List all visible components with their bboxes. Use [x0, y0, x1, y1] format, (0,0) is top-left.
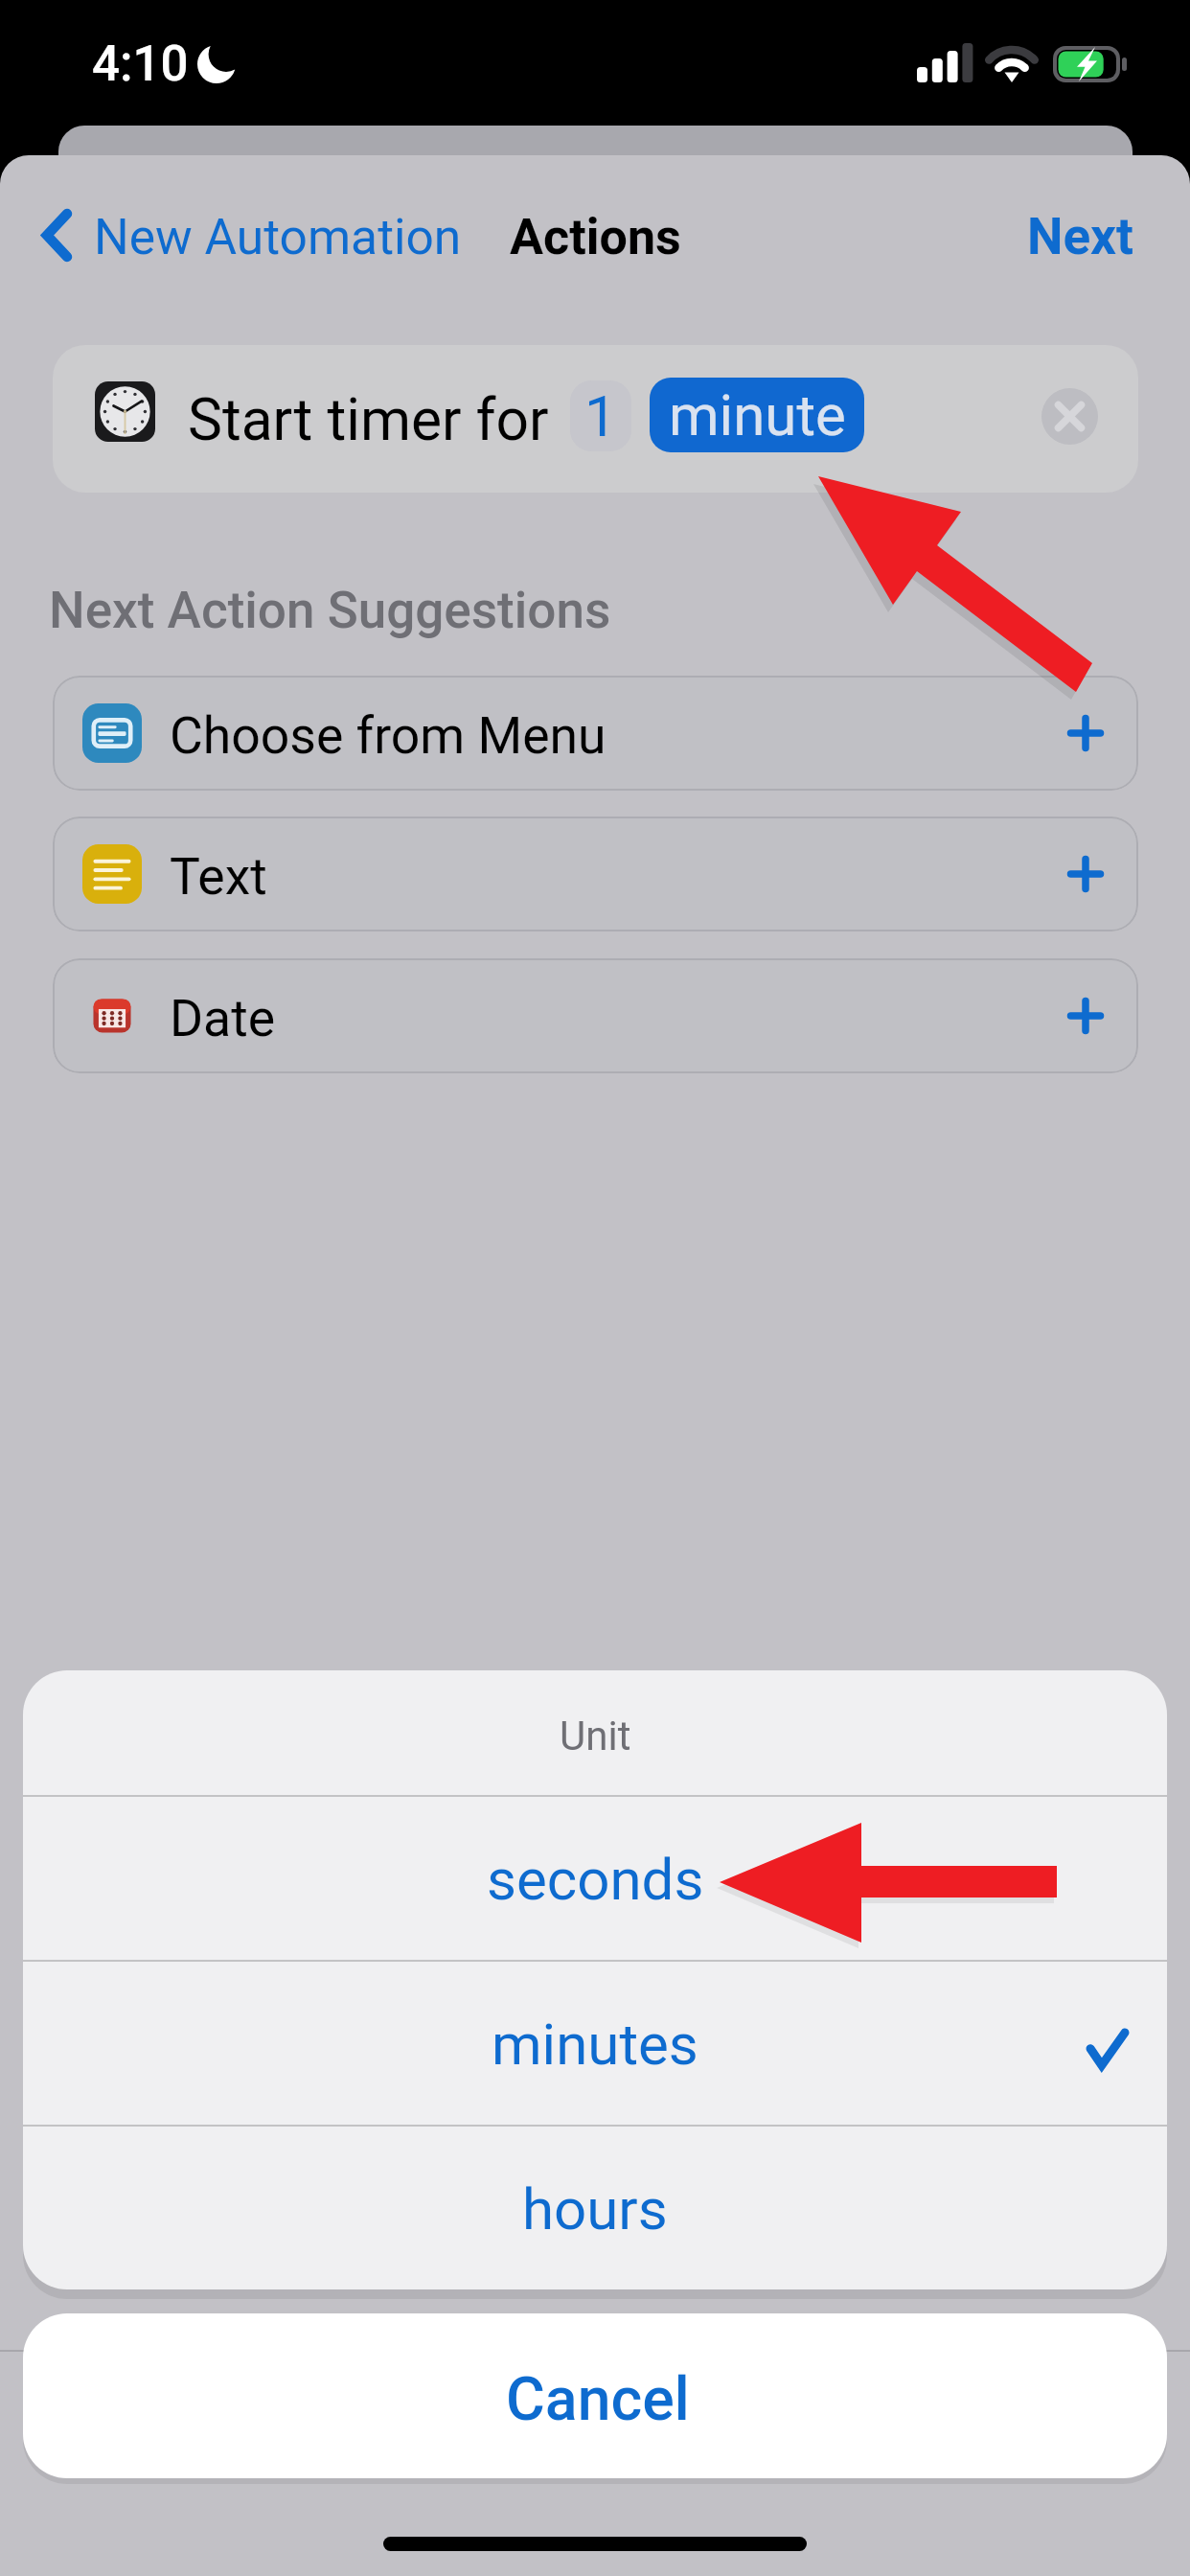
button[interactable]: New Automation [92, 208, 464, 265]
staticText: hours [522, 2175, 668, 2242]
button[interactable]: Back [29, 190, 105, 282]
button[interactable]: Remove action [1041, 388, 1098, 445]
staticText: Actions [510, 208, 681, 266]
staticText: Next Action Suggestions [49, 581, 611, 640]
button[interactable]: Date [53, 958, 1138, 1073]
staticText: 4:10 [92, 35, 189, 93]
staticText: Choose from Menu [170, 705, 606, 766]
staticText: Next [1027, 207, 1133, 266]
button[interactable]: Add Choose from Menu [1067, 715, 1104, 751]
button[interactable]: minutes [23, 1962, 1167, 2127]
button[interactable]: seconds [23, 1797, 1167, 1962]
button[interactable]: minute [650, 378, 864, 452]
button[interactable]: Choose from Menu [53, 676, 1138, 791]
staticText: Cancel [506, 2364, 690, 2434]
staticText: Start timer for [188, 386, 549, 454]
staticText: Text [170, 846, 267, 907]
button[interactable]: Add Text [1067, 856, 1104, 892]
button[interactable]: Add Date [1067, 998, 1104, 1034]
button[interactable]: Cancel [23, 2313, 1167, 2478]
staticText: seconds [487, 1846, 704, 1913]
staticText: 1 [584, 382, 617, 449]
staticText: New Automation [94, 208, 462, 265]
staticText: Date [170, 988, 276, 1048]
staticText: Unit [560, 1713, 631, 1759]
button[interactable]: Start timer for [53, 345, 1138, 493]
staticText: minutes [492, 2011, 698, 2078]
button[interactable]: hours [23, 2127, 1167, 2289]
button[interactable]: Next [1025, 207, 1135, 266]
button[interactable]: Text [53, 816, 1138, 931]
button[interactable]: 1 [570, 380, 631, 451]
staticText: minute [669, 381, 846, 448]
